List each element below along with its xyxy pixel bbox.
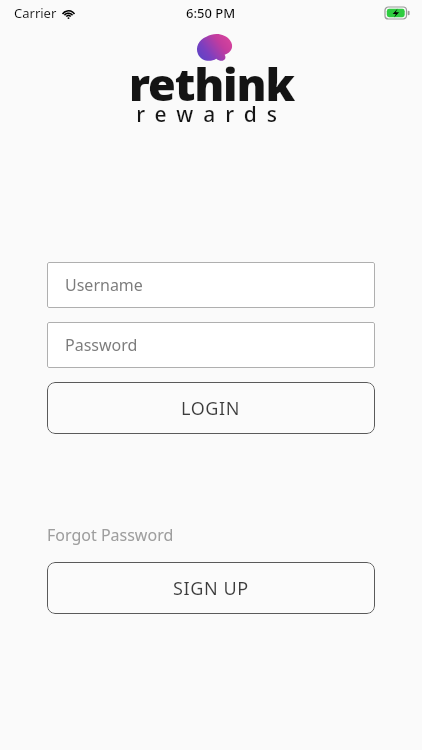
button[interactable]: Forgot Password: [47, 522, 174, 548]
button[interactable]: Username: [47, 262, 375, 308]
staticText: Carrier: [14, 4, 57, 22]
button[interactable]: SIGN UP: [47, 562, 375, 614]
staticText: Password: [65, 334, 138, 356]
staticText: Username: [65, 274, 143, 296]
staticText: rethink: [129, 53, 294, 114]
staticText: Forgot Password: [47, 524, 174, 546]
button[interactable]: Password: [47, 322, 375, 368]
button[interactable]: LOGIN: [47, 382, 375, 434]
staticText: SIGN UP: [173, 576, 249, 601]
staticText: LOGIN: [181, 396, 241, 421]
staticText: 6:50 PM: [186, 4, 236, 22]
staticText: rewards: [136, 100, 287, 129]
